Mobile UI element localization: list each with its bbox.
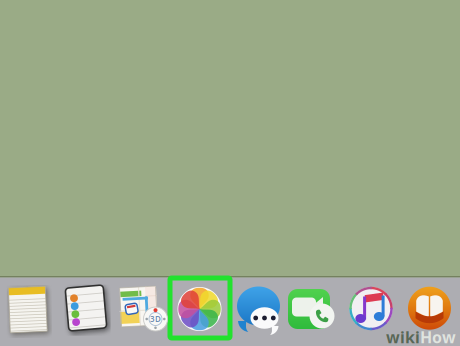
button[interactable]: Maps [120,286,172,332]
staticText: wiki [386,326,420,346]
button[interactable]: iTunes [349,286,393,330]
button[interactable]: Messages [236,285,282,333]
button[interactable]: Photos [177,287,221,331]
button[interactable]: iBooks [407,286,451,330]
button[interactable]: Notes [5,283,50,336]
button[interactable]: Reminders [63,282,109,333]
staticText: 3D [150,314,161,324]
staticText: How [420,326,456,346]
button[interactable]: FaceTime [288,286,338,332]
